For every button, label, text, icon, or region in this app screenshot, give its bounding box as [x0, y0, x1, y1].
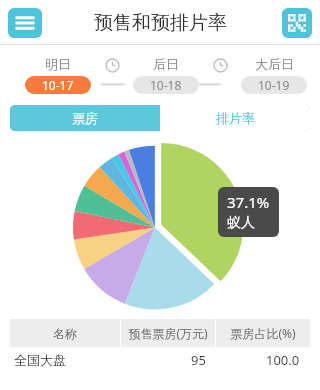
staticText: 大后日	[255, 56, 294, 72]
button[interactable]: 大后日	[238, 52, 310, 94]
staticText: 票房	[72, 110, 98, 126]
staticText: 预售票房(万元)	[128, 325, 208, 341]
staticText: 排片率	[216, 110, 255, 126]
staticText: 37.1%	[227, 192, 270, 212]
button[interactable]: QR code	[282, 8, 312, 38]
button[interactable]: 后日	[130, 52, 202, 94]
button[interactable]: 明日	[22, 52, 94, 94]
button[interactable]: 票房	[10, 105, 160, 131]
staticText: 10-19	[258, 77, 290, 93]
staticText: 蚁人	[227, 214, 255, 232]
button[interactable]: 排片率	[160, 105, 310, 131]
staticText: 10-18	[150, 77, 182, 93]
staticText: 10-17	[42, 77, 74, 93]
staticText: 95	[191, 351, 206, 369]
button[interactable]: 全国大盘	[10, 347, 310, 373]
staticText: 后日	[153, 56, 179, 72]
staticText: 票房占比(%)	[230, 325, 296, 341]
staticText: 名称	[53, 326, 77, 341]
staticText: 全国大盘	[14, 352, 66, 368]
button[interactable]: Menu	[8, 8, 42, 38]
staticText: 明日	[45, 56, 71, 72]
staticText: 100.0	[266, 351, 300, 369]
staticText: 预售和预排片率	[94, 11, 227, 35]
